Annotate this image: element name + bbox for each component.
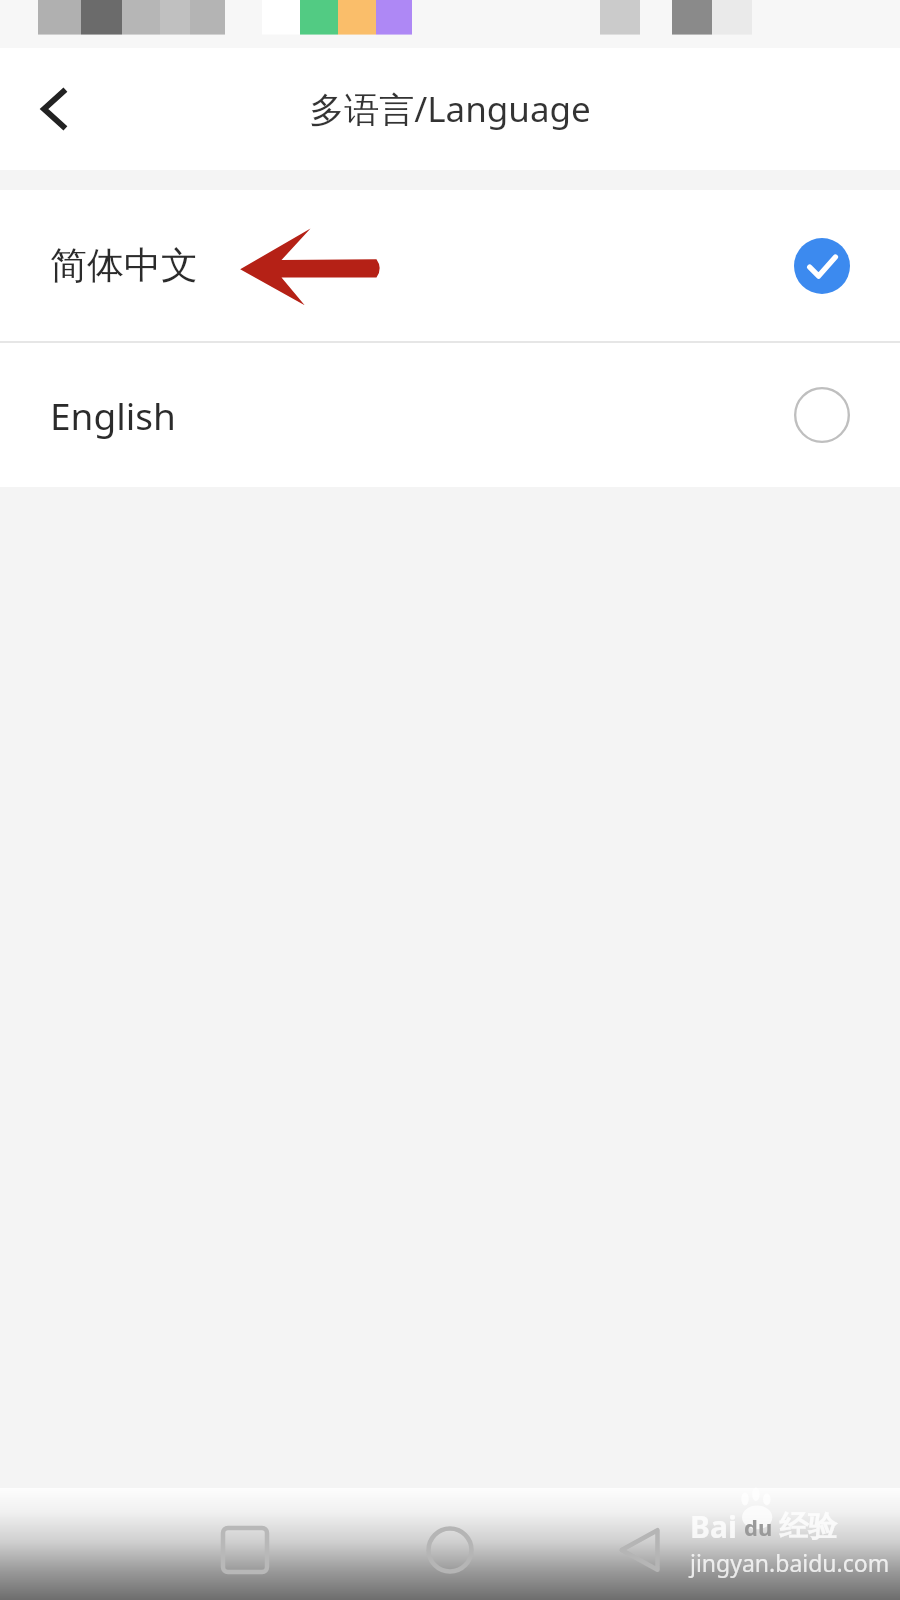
button[interactable]: 简体中文 bbox=[0, 190, 900, 341]
staticText: English bbox=[50, 390, 176, 440]
button[interactable]: Back bbox=[0, 54, 110, 164]
button[interactable]: Home bbox=[385, 1488, 515, 1600]
staticText: jingyan.baidu.com bbox=[690, 1547, 890, 1578]
button[interactable]: Back bbox=[575, 1488, 705, 1600]
button[interactable]: English bbox=[0, 343, 900, 487]
staticText: 多语言/Language bbox=[309, 85, 591, 133]
staticText: du bbox=[744, 1512, 773, 1542]
button[interactable]: Recent apps bbox=[180, 1488, 310, 1600]
staticText: 经验 bbox=[779, 1508, 837, 1545]
staticText: 简体中文 bbox=[50, 242, 198, 289]
staticText: Bai bbox=[690, 1506, 737, 1547]
